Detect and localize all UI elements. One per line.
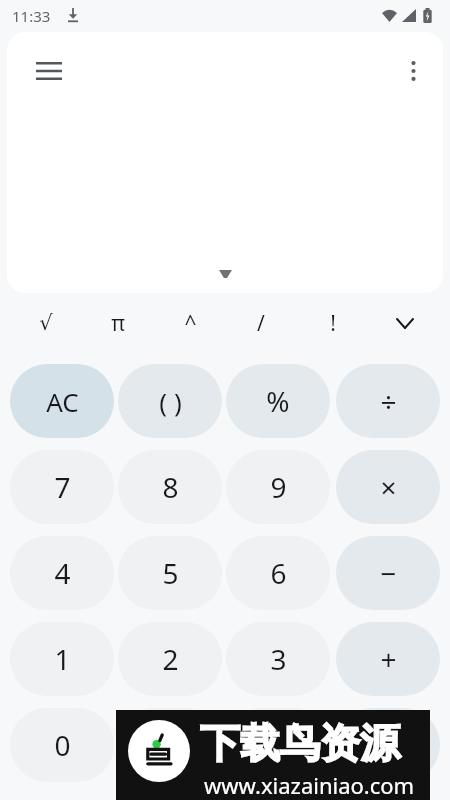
button[interactable]: × [336,450,440,524]
button[interactable]: 7 [10,450,114,524]
staticText: × [380,468,397,506]
staticText: 6 [270,554,287,592]
button[interactable]: pi [92,301,144,345]
staticText: AC [46,384,79,419]
button[interactable]: 6 [226,536,330,610]
staticText: − [380,554,397,592]
staticText: 8 [162,468,179,506]
button[interactable]: − [336,536,440,610]
staticText: ( ) [159,384,182,419]
button[interactable]: . [118,708,222,782]
staticText: ÷ [380,382,397,420]
button[interactable]: 8 [118,450,222,524]
staticText: ! [330,309,336,338]
staticText: 3 [270,640,287,678]
staticText: 1 [54,640,71,678]
button[interactable]: 0 [10,708,114,782]
staticText: ^ [184,309,197,338]
staticText: π [111,309,125,338]
staticText: 0 [54,726,71,764]
button[interactable]: 5 [118,536,222,610]
staticText: = [380,726,397,764]
staticText: www.xiazainiao.com [204,770,415,800]
button[interactable]: 9 [226,450,330,524]
staticText: 2 [162,640,179,678]
button[interactable]: AC [10,364,114,438]
button[interactable]: div [235,301,287,345]
button[interactable]: chev [379,301,431,345]
staticText: 下载鸟资源 [200,718,400,768]
staticText: 4 [54,554,71,592]
button[interactable]: More options [390,48,436,94]
button[interactable]: 2 [118,622,222,696]
button[interactable]: pow [164,301,216,345]
button[interactable]: ÷ [336,364,440,438]
staticText: ⌫ [258,729,298,762]
staticText: . [166,726,174,764]
button[interactable]: Menu [26,48,72,94]
staticText: √ [39,311,53,335]
button[interactable]: = [336,708,440,782]
button[interactable]: ( ) [118,364,222,438]
staticText: 7 [54,468,71,506]
button[interactable]: sqrt [20,301,72,345]
button[interactable]: % [226,364,330,438]
staticText: 9 [270,468,287,506]
staticText: % [266,382,290,420]
button[interactable]: ⌫ [226,708,330,782]
button[interactable]: 1 [10,622,114,696]
button[interactable]: + [336,622,440,696]
staticText: / [257,309,265,338]
staticText: 11:33 [12,6,51,26]
button[interactable]: 4 [10,536,114,610]
button[interactable]: Expand history [205,263,245,285]
button[interactable]: 3 [226,622,330,696]
staticText: 5 [162,554,179,592]
button[interactable]: fact [307,301,359,345]
staticText: + [380,640,397,678]
